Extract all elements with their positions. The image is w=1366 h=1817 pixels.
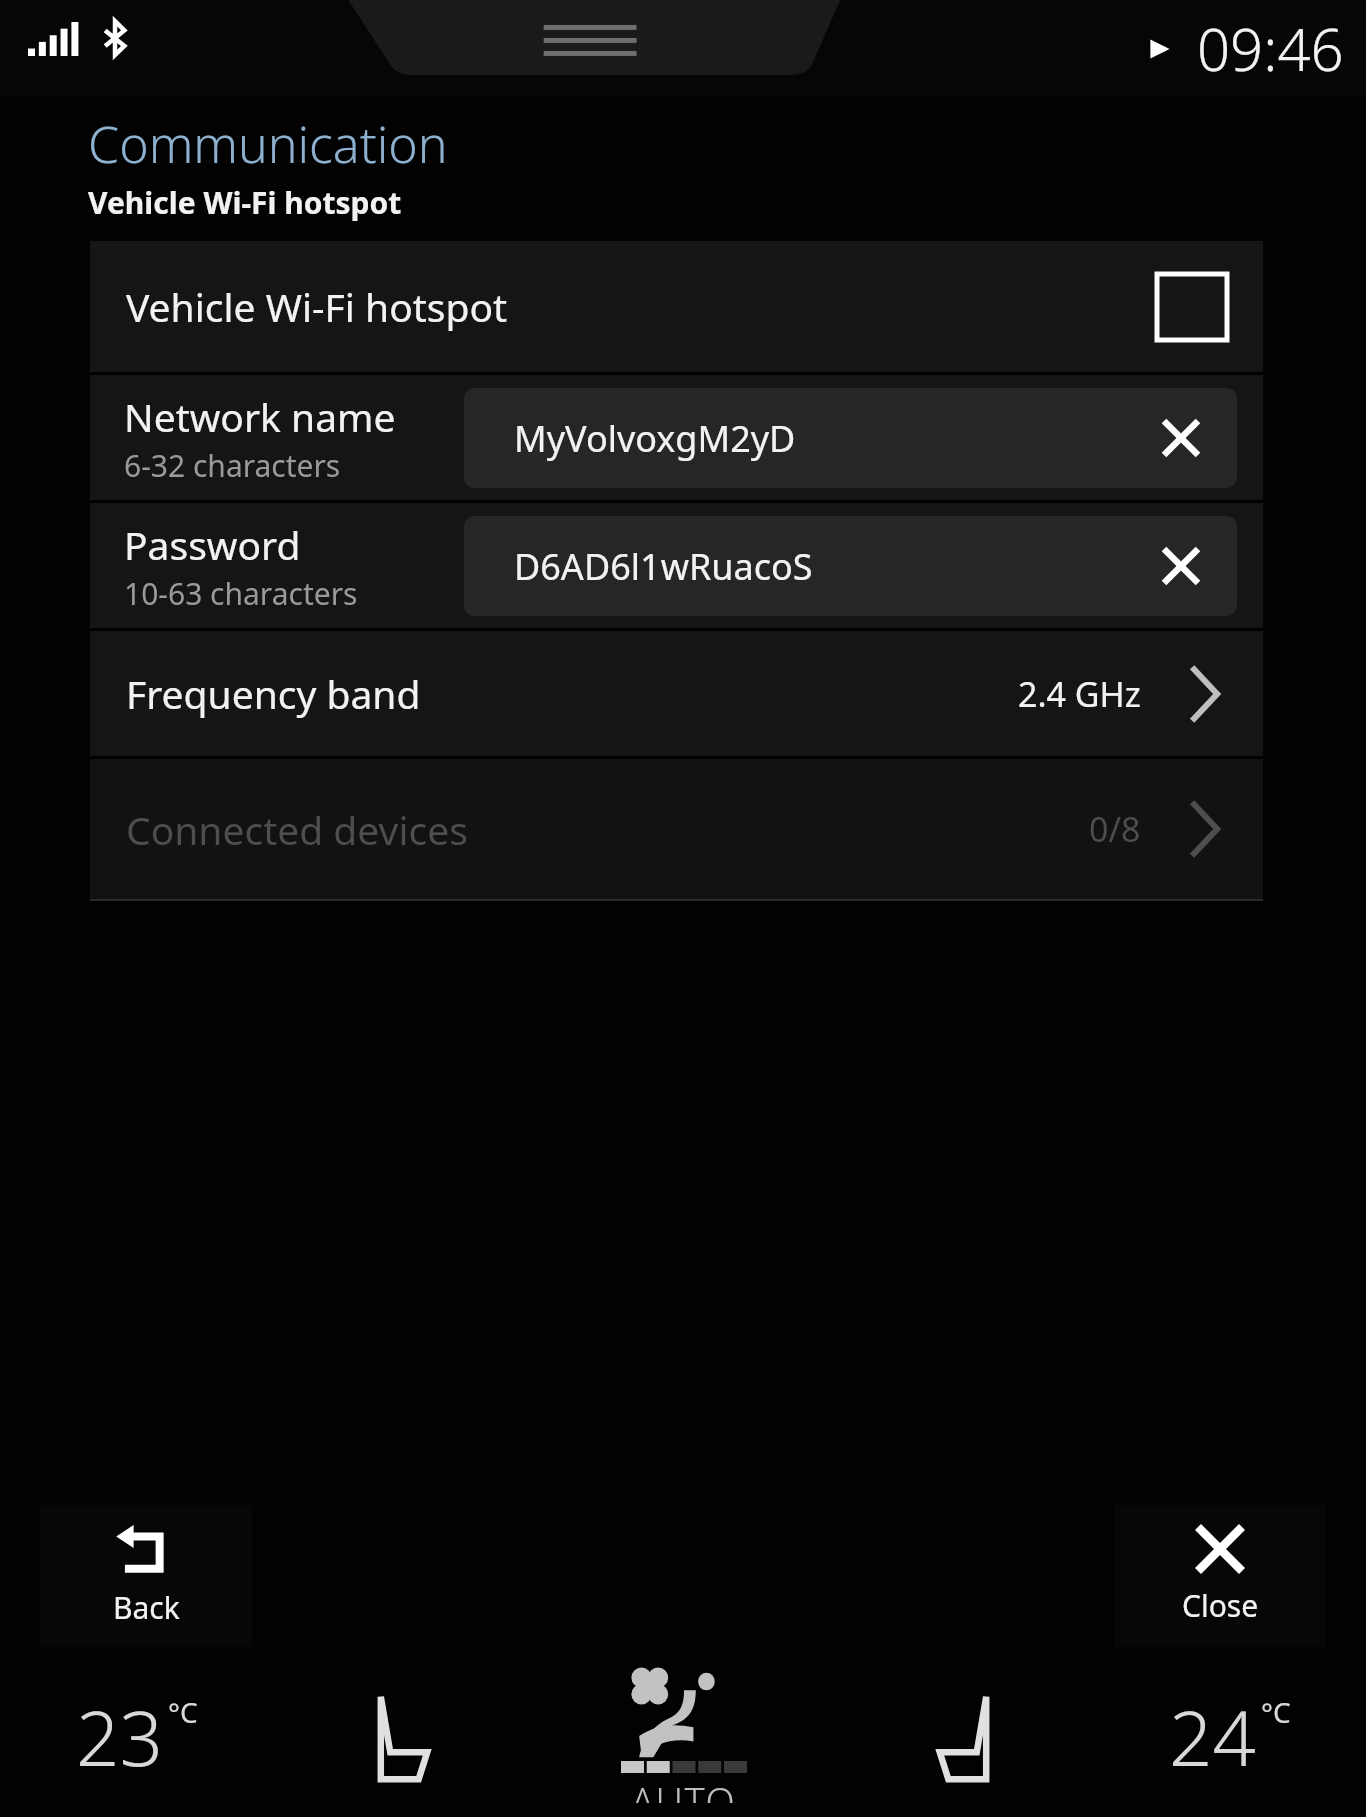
staticText: 23 [76,1685,163,1789]
button[interactable]: Frequency band [90,631,1263,756]
staticText: Communication [88,110,448,178]
button[interactable]: Driver seat heating [274,1671,522,1803]
staticText: °C [1261,1693,1291,1731]
button[interactable]: Vehicle Wi-Fi hotspot [90,241,1263,372]
button[interactable]: Clear Password [1153,538,1209,594]
staticText: Vehicle Wi-Fi hotspot [126,280,1157,333]
button[interactable]: Climate auto [522,1671,845,1803]
button[interactable]: Passenger seat heating [845,1671,1093,1803]
other: Open [1175,800,1233,858]
staticText: 10-63 characters [124,573,358,614]
other: Open [1175,665,1233,723]
staticText: 2.4 GHz [1018,671,1141,717]
staticText: Close [1182,1585,1259,1626]
button[interactable]: Connected devices [90,759,1263,899]
button[interactable]: Back [40,1505,252,1647]
button[interactable]: MyVolvoxgM2yD [464,388,1237,488]
staticText: Connected devices [126,803,1089,856]
staticText: 24 [1169,1685,1256,1789]
staticText: Back [113,1587,180,1628]
staticText: D6AD6l1wRuacoS [514,542,1153,591]
button[interactable]: 24 [1163,1685,1297,1789]
staticText: 6-32 characters [124,445,341,486]
staticText: 0/8 [1089,806,1141,852]
staticText: Vehicle Wi-Fi hotspot [88,182,402,223]
staticText: AUTO [631,1775,737,1803]
staticText: MyVolvoxgM2yD [514,414,1153,463]
staticText: Network name [124,390,396,443]
staticText: Password [124,518,301,571]
button[interactable]: Clear Network name [1153,410,1209,466]
staticText: Frequency band [126,667,1018,720]
button[interactable]: 23 [70,1685,204,1789]
button[interactable]: D6AD6l1wRuacoS [464,516,1237,616]
staticText: °C [168,1693,198,1731]
staticText: 09:46 [1197,9,1344,88]
button[interactable]: Close [1114,1505,1326,1647]
